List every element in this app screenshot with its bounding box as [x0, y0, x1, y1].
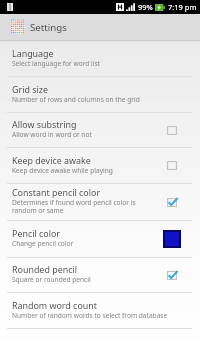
staticText: Allow word in word or not	[12, 130, 92, 139]
staticText: Change pencil color	[12, 239, 74, 248]
staticText: Rounded pencil	[12, 263, 77, 275]
staticText: Grid size	[12, 83, 48, 95]
button[interactable]: Keep device awake	[0, 148, 200, 183]
button[interactable]: Constant pencil color	[0, 184, 200, 220]
staticText: Random word count	[12, 299, 97, 311]
staticText: 99%	[138, 2, 153, 12]
staticText: Determines if found word pencil color is…	[12, 198, 156, 215]
button[interactable]: Rounded pencil	[0, 258, 200, 292]
staticText: Square or rounded pencil	[12, 275, 91, 284]
staticText: Allow substring	[12, 118, 77, 130]
staticText: 7:19 pm	[168, 2, 197, 12]
staticText: Keep device awake	[12, 154, 91, 166]
button[interactable]: Random word count	[0, 293, 200, 328]
staticText: Select language for word list	[12, 59, 100, 68]
button[interactable]: Pencil color	[0, 221, 200, 257]
staticText: Keep device awake while playing	[12, 166, 113, 175]
button[interactable]: Language	[0, 42, 200, 76]
staticText: Language	[12, 47, 54, 59]
button[interactable]: Allow substring	[0, 113, 200, 147]
staticText: Number of rows and columns on the grid	[12, 95, 140, 104]
staticText: Settings	[30, 21, 67, 34]
staticText: Pencil color	[12, 227, 61, 239]
staticText: Constant pencil color	[12, 186, 101, 198]
staticText: Number of random words to select from da…	[12, 311, 168, 320]
button[interactable]: Grid size	[0, 77, 200, 112]
